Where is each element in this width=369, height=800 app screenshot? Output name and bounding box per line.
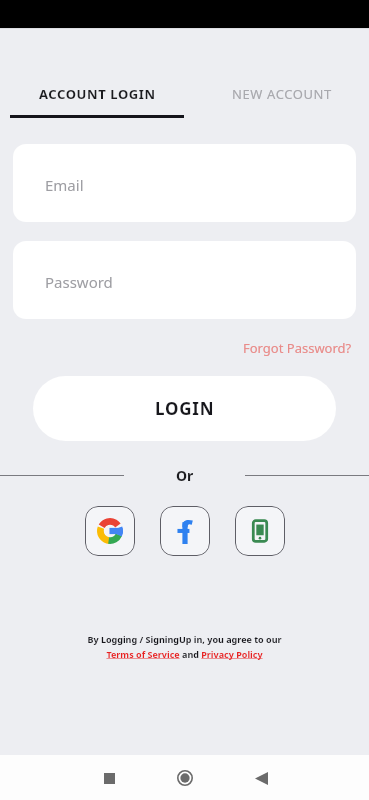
button[interactable]: NEW ACCOUNT bbox=[194, 81, 369, 107]
button[interactable]: Sign in with Google bbox=[85, 506, 135, 556]
button[interactable]: Recent apps bbox=[87, 756, 131, 800]
button[interactable]: Sign in with Facebook bbox=[160, 506, 210, 556]
button[interactable]: ACCOUNT LOGIN bbox=[0, 81, 194, 118]
button[interactable]: LOGIN bbox=[33, 376, 336, 441]
staticText: Email bbox=[45, 175, 84, 195]
staticText: ACCOUNT LOGIN bbox=[39, 85, 156, 103]
staticText: Forgot Password? bbox=[243, 339, 352, 357]
button[interactable]: Email bbox=[13, 144, 356, 222]
staticText: Or bbox=[176, 466, 194, 485]
button[interactable]: Forgot Password? bbox=[243, 337, 369, 359]
staticText: Terms of Service and Privacy Policy bbox=[106, 648, 263, 660]
button[interactable]: Sign in with phone number bbox=[235, 506, 285, 556]
staticText: LOGIN bbox=[155, 397, 215, 420]
button[interactable]: Back bbox=[239, 756, 283, 800]
button[interactable]: Password bbox=[13, 241, 356, 319]
button[interactable]: Home bbox=[163, 756, 207, 800]
staticText: Password bbox=[45, 272, 113, 292]
staticText: By Logging / SigningUp in, you agree to … bbox=[87, 633, 282, 645]
staticText: NEW ACCOUNT bbox=[232, 85, 332, 103]
button[interactable]: Terms of Service and Privacy Policy bbox=[106, 648, 263, 660]
